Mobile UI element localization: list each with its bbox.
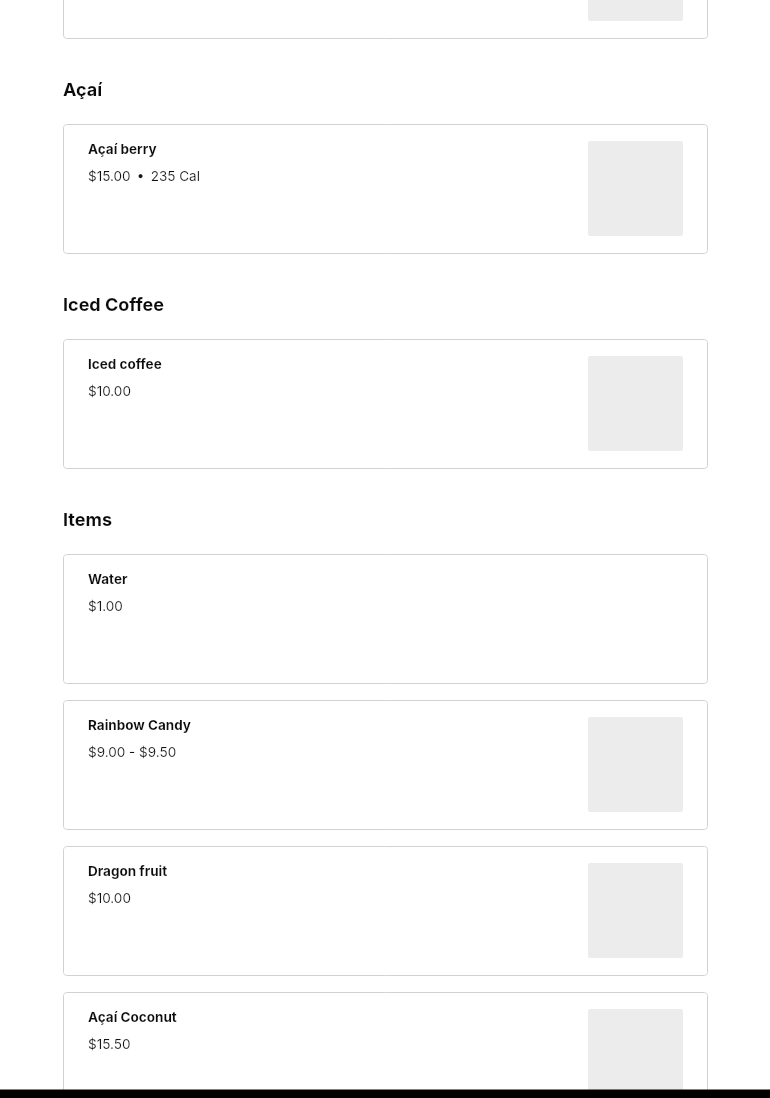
staticText: $15.50 bbox=[88, 1036, 131, 1052]
button[interactable]: Açaí berry bbox=[63, 124, 708, 254]
button[interactable]: Water bbox=[63, 554, 708, 684]
staticText: Rainbow Candy bbox=[88, 717, 191, 733]
button[interactable]: Açaí Coconut bbox=[63, 992, 708, 1098]
staticText: $9.00 - $9.50 bbox=[88, 744, 177, 760]
staticText: Açaí Coconut bbox=[88, 1009, 177, 1025]
button[interactable]: Rainbow Candy bbox=[63, 700, 708, 830]
staticText: $1.00 bbox=[88, 598, 123, 614]
button[interactable]: Dragon fruit bbox=[63, 846, 708, 976]
staticText: Dragon fruit bbox=[88, 863, 168, 879]
button[interactable]: Smoothie bbox=[63, 0, 708, 39]
staticText: Water bbox=[88, 571, 128, 587]
staticText: Iced coffee bbox=[88, 356, 162, 372]
staticText: Açaí berry bbox=[88, 141, 157, 157]
staticText: Açaí bbox=[63, 79, 103, 101]
staticText: Iced Coffee bbox=[63, 294, 164, 316]
staticText: Items bbox=[63, 509, 112, 531]
other: Açaí Coconut photo bbox=[588, 1009, 683, 1098]
staticText: $10.00 bbox=[88, 383, 131, 399]
staticText: $10.00 bbox=[88, 890, 131, 906]
button[interactable]: Iced coffee bbox=[63, 339, 708, 469]
staticText: $15.00 • 235 Cal bbox=[88, 168, 200, 184]
